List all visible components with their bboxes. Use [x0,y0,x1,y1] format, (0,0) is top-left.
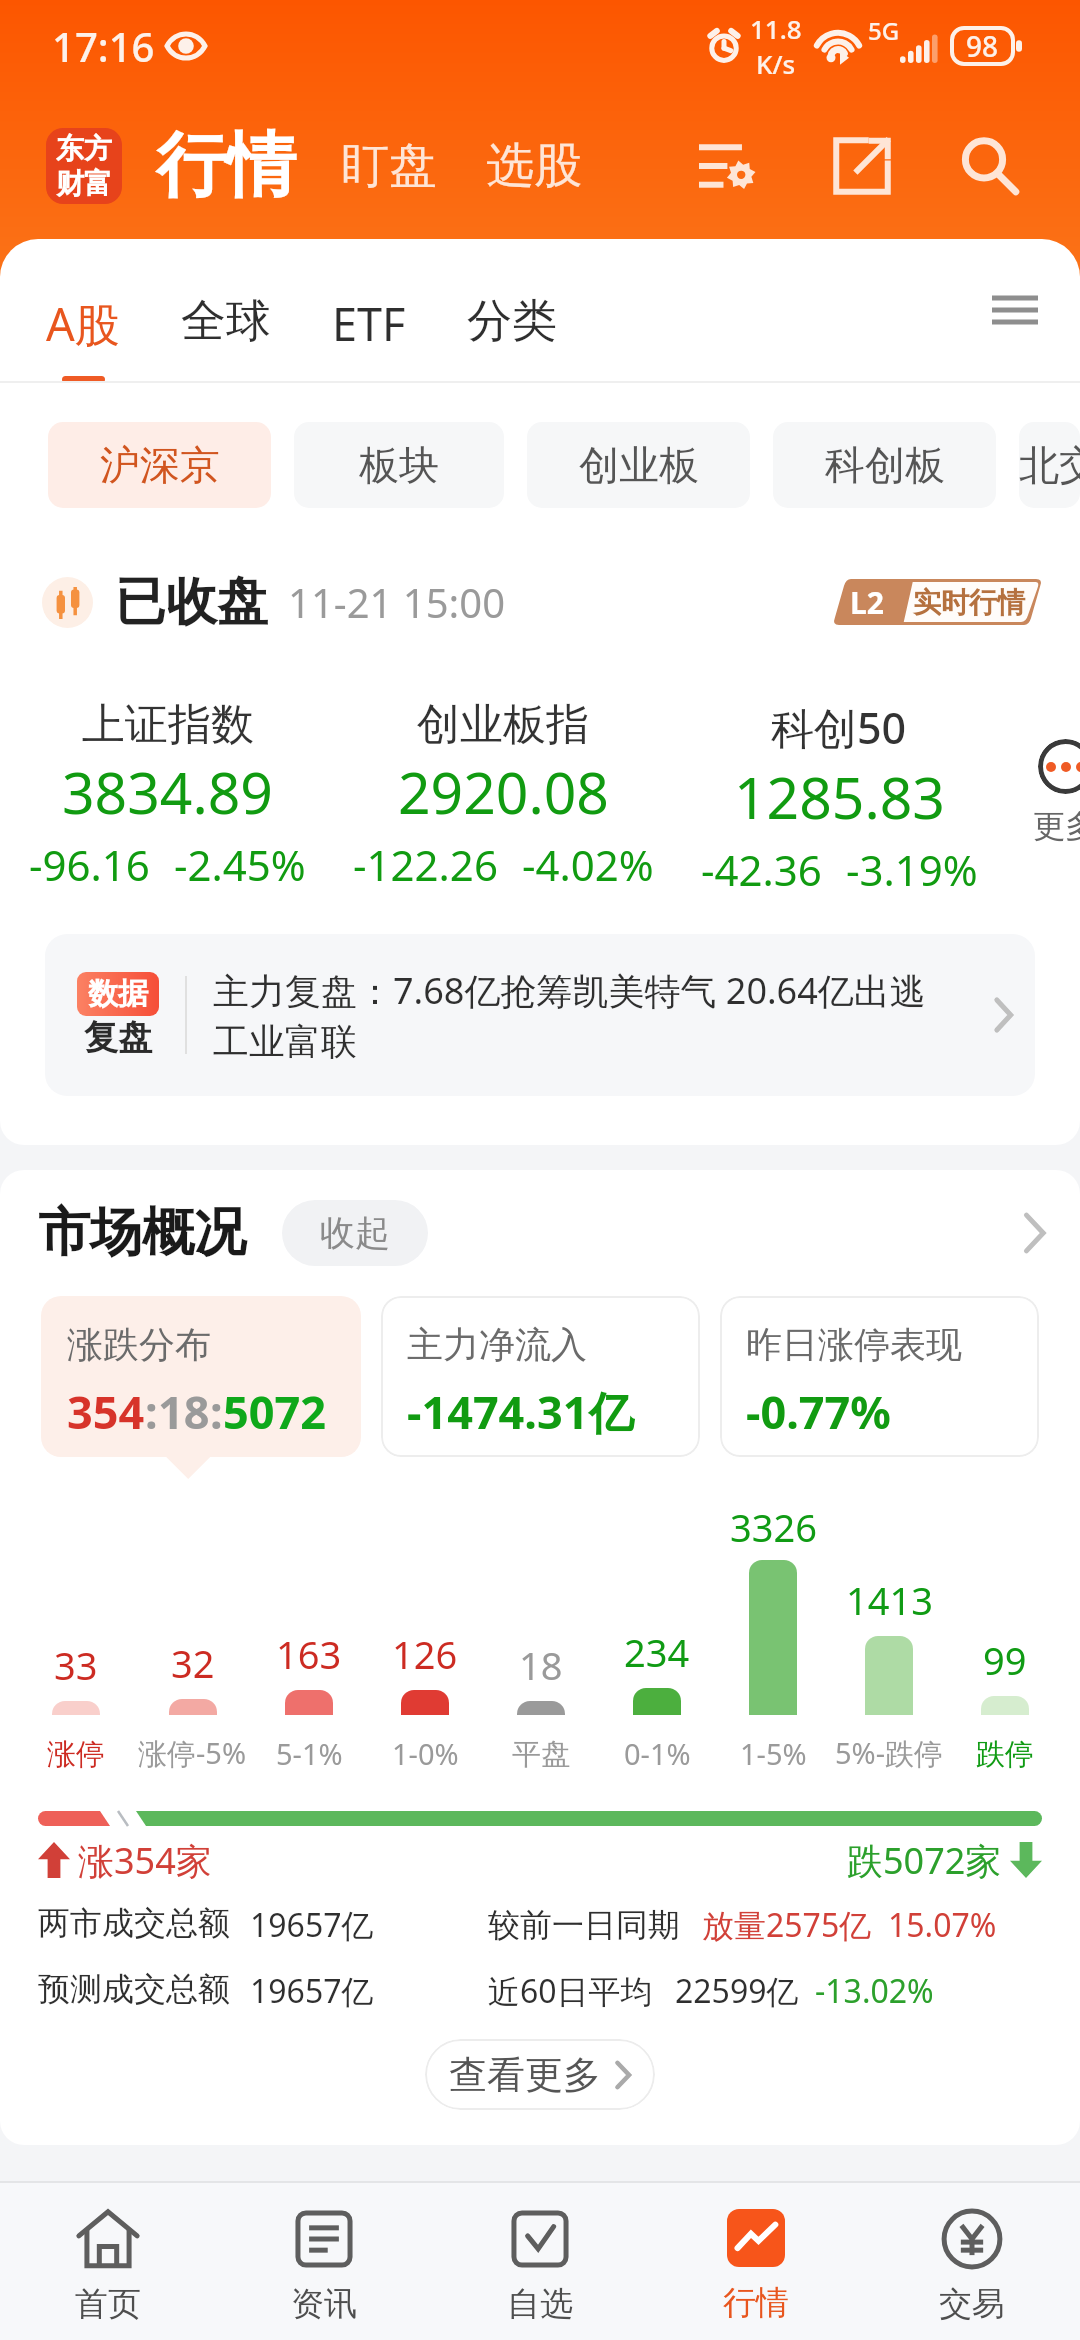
staticText: 33 [54,1639,98,1691]
button[interactable]: 分享 [826,130,898,202]
button[interactable]: 涨跌分布 [41,1296,361,1457]
staticText: 5G [868,14,900,47]
staticText: -13.02% [815,1969,934,2013]
staticText: 更多 [1033,806,1080,846]
button[interactable]: 更多分类 [986,281,1044,339]
staticText: -0.77% [746,1381,891,1442]
staticText: 涨354家 [78,1836,212,1885]
staticText: 5-1% [276,1734,343,1773]
staticText: 跌停 [976,1736,1034,1773]
button[interactable]: 首页 [0,2193,216,2340]
staticText: L2 [850,582,884,623]
button[interactable]: 创业板指 [335,698,671,893]
staticText: 主力复盘：7.68亿抢筹凯美特气 20.64亿出逃工业富联 [213,966,943,1065]
staticText: 分类 [467,293,557,350]
button[interactable]: 选股 [486,126,582,206]
staticText: 盯盘 [341,136,437,196]
staticText: 126 [392,1628,458,1680]
button[interactable]: 全球 [179,293,273,380]
staticText: 涨停 [47,1736,105,1773]
button[interactable]: 设置 [694,130,766,202]
staticText: 22599亿 [675,1969,799,2013]
staticText: 科创板 [825,440,945,490]
staticText: 查看更多 [449,2051,601,2099]
staticText: 5072 [223,1381,326,1442]
staticText: 5%-跌停 [835,1733,944,1773]
button[interactable]: 上证指数 [0,698,335,893]
staticText: 行情 [156,122,296,210]
staticText: 1413 [846,1574,933,1626]
staticText: : [210,1381,223,1442]
staticText: 交易 [939,2283,1005,2325]
staticText: 创业板 [579,440,699,490]
staticText: 行情 [723,2282,789,2324]
button[interactable]: 北交所 [1019,422,1080,508]
staticText: 科创50 [771,698,907,757]
staticText: 自选 [507,2283,573,2325]
staticText: : [145,1381,158,1442]
button[interactable]: 科创50 [671,698,1007,898]
staticText: 已收盘 [115,570,268,634]
button[interactable]: 查看更多 [425,2039,655,2110]
staticText: 99 [983,1634,1027,1686]
staticText: 财富 [56,166,112,201]
staticText: 全球 [181,293,271,350]
staticText: 资讯 [291,2283,357,2325]
staticText: -42.36 [701,841,822,898]
button[interactable]: A股 [44,293,122,383]
staticText: 11-21 15:00 [288,575,506,629]
staticText: 板块 [359,440,439,490]
button[interactable]: ETF [330,293,408,383]
staticText: 北交所 [1019,440,1080,490]
button[interactable]: 沪深京 [48,422,271,508]
button[interactable]: 昨日涨停表现 [720,1296,1039,1457]
staticText: 234 [624,1626,690,1678]
button[interactable]: 行情 [648,2193,864,2340]
staticText: 163 [276,1628,342,1680]
staticText: 1285.83 [734,758,945,836]
button[interactable]: 交易 [864,2193,1080,2340]
staticText: 17:16 [52,19,155,73]
staticText: 近60日平均 [488,1969,653,2013]
staticText: 98 [966,27,999,65]
staticText: 0-1% [624,1734,691,1773]
staticText: 实时行情 [913,585,1025,620]
button[interactable]: 搜索 [954,130,1026,202]
staticText: -4.02% [522,836,654,893]
staticText: 首页 [75,2283,141,2325]
staticText: K/s [756,46,796,81]
staticText: 创业板指 [417,698,589,752]
staticText: 市场概况 [38,1200,246,1266]
staticText: A股 [46,293,120,354]
staticText: 32 [171,1637,215,1689]
staticText: 19657亿 [250,1903,374,1947]
staticText: -3.19% [846,841,978,898]
staticText: 预测成交总额 [38,1969,230,2009]
staticText: 18 [158,1381,210,1442]
staticText: 11.8 [750,11,802,46]
button[interactable]: 科创板 [773,422,996,508]
staticText: ETF [332,293,406,354]
staticText: -1474.31亿 [407,1381,634,1442]
staticText: 19657亿 [250,1969,374,2013]
button[interactable]: 资讯 [216,2193,432,2340]
staticText: 354 [67,1381,145,1442]
staticText: 放量2575亿 [702,1903,872,1947]
staticText: 数据 [88,975,148,1013]
button[interactable]: 收起 [282,1200,428,1266]
button[interactable]: 创业板 [527,422,750,508]
button[interactable]: 主力净流入 [381,1296,700,1457]
button[interactable]: 分类 [465,293,559,380]
staticText: 1-5% [740,1734,807,1773]
button[interactable]: 自选 [432,2193,648,2340]
button[interactable]: 数据 [45,934,1035,1096]
button[interactable]: 板块 [294,422,504,508]
staticText: 主力净流入 [407,1322,587,1367]
staticText: 跌5072家 [847,1836,1002,1885]
staticText: 收起 [320,1211,390,1255]
staticText: 东方 [56,131,112,166]
button[interactable]: 盯盘 [341,126,437,206]
button[interactable]: 更多指数 [1015,739,1080,846]
button[interactable]: 市场概况 [38,1170,1046,1296]
staticText: 涨跌分布 [67,1322,211,1367]
